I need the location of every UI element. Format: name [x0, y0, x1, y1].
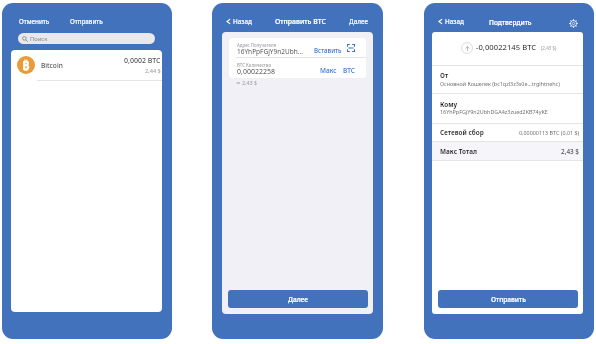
staticText: Кому [440, 100, 458, 109]
button[interactable]: Отменить [18, 15, 51, 28]
staticText: ₿ [22, 56, 30, 74]
button[interactable]: Далее [348, 15, 370, 28]
staticText: Отправить [70, 17, 103, 26]
button[interactable]: Отправить [69, 15, 104, 28]
staticText: Подтвердить [489, 18, 532, 27]
staticText: BTC Количество [237, 62, 271, 68]
staticText: От [440, 71, 449, 80]
staticText: Сетевой сбор [440, 128, 484, 137]
staticText: Вставить [314, 46, 342, 54]
staticText: Поиск [30, 35, 48, 43]
button[interactable]: Назад [224, 15, 253, 28]
button[interactable]: Отправить [438, 290, 578, 308]
staticText: BTC [343, 66, 355, 75]
staticText: 2,43 $ [561, 147, 580, 156]
button[interactable]: Scan QR code [346, 43, 356, 53]
button[interactable]: Вставить [313, 44, 343, 56]
staticText: Макс Тотал [440, 147, 478, 156]
staticText: (2,43 $) [541, 45, 557, 51]
staticText: ≈ 2,43 $ [236, 79, 258, 86]
staticText: 0,0002 BTC [124, 56, 161, 66]
staticText: Назад [233, 17, 252, 26]
staticText: -0,00022145 BTC [476, 42, 537, 52]
button[interactable]: Settings [568, 18, 579, 29]
staticText: Адрес Получателя [237, 42, 277, 48]
staticText: Основной Кошелек (bc1qzl3z3s0e...trglhtn… [440, 80, 560, 87]
staticText: Отменить [19, 17, 50, 26]
staticText: 16YhPpFGjY9n2UbhDGA4z3zued2KB74yKE [440, 108, 548, 115]
staticText: Далее [288, 295, 308, 304]
staticText: 0,00000113 BTC (0,01 $) [519, 129, 580, 136]
button[interactable]: ₿ [11, 50, 162, 80]
staticText: Отправить BTC [275, 17, 326, 26]
staticText: 0,00022258 [237, 67, 275, 77]
staticText: Макс [320, 66, 337, 75]
button[interactable]: Назад [436, 15, 465, 28]
button[interactable]: BTC [342, 64, 356, 77]
staticText: 16YhPpFGjY9n2Ubh... [237, 47, 303, 56]
staticText: 2,44 $ [145, 67, 161, 75]
staticText: Назад [445, 17, 464, 26]
button[interactable]: Макс [319, 64, 338, 77]
button[interactable]: Далее [228, 290, 368, 308]
staticText: Bitcoin [41, 61, 63, 70]
button[interactable]: Поиск [18, 33, 155, 44]
staticText: Далее [349, 17, 369, 26]
staticText: Отправить [491, 295, 526, 304]
